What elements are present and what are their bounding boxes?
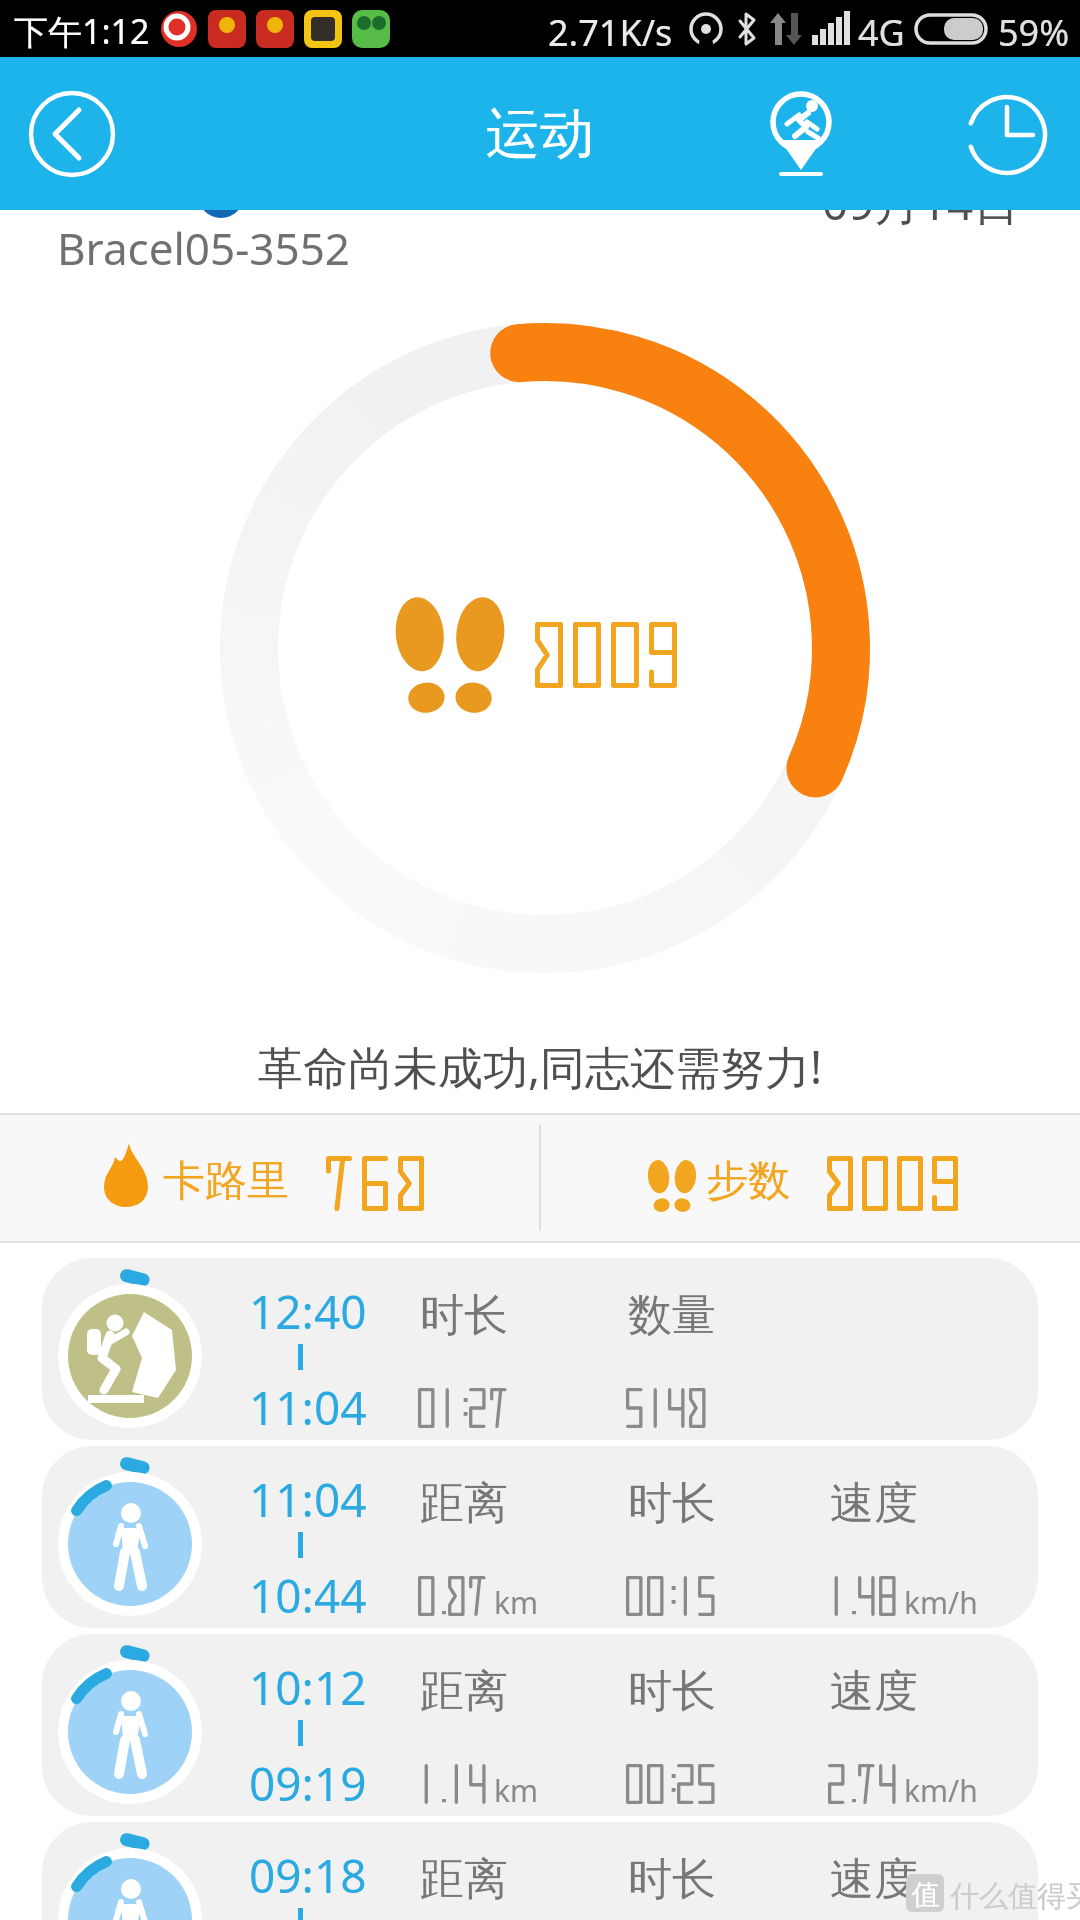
button[interactable]: 步数 — [541, 1115, 1080, 1241]
button[interactable] — [28, 90, 116, 178]
staticText: 时长 — [628, 1852, 716, 1907]
staticText: 09月14日 — [822, 171, 1020, 234]
staticText: 距离 — [420, 1664, 508, 1719]
staticText: 11:04 — [249, 1376, 367, 1439]
button[interactable]: 10:12 — [42, 1634, 1038, 1816]
button[interactable] — [760, 89, 844, 209]
staticText: 速度 — [830, 1852, 918, 1907]
staticText: 11:04 — [249, 1468, 367, 1531]
staticText: 什么值得买 — [950, 1878, 1080, 1915]
staticText: 时长 — [628, 1664, 716, 1719]
staticText: 值 — [912, 1877, 940, 1912]
staticText: 步数 — [706, 1155, 790, 1208]
button[interactable]: 卡路里 — [0, 1115, 539, 1241]
staticText: km/h — [904, 1582, 978, 1623]
staticText: 时长 — [628, 1476, 716, 1531]
staticText: 数量 — [628, 1288, 716, 1343]
staticText: 速度 — [830, 1476, 918, 1531]
staticText: 10:12 — [249, 1656, 367, 1719]
staticText: 10:44 — [249, 1564, 367, 1627]
button[interactable]: 11:04 — [42, 1446, 1038, 1628]
staticText: km — [494, 1770, 539, 1811]
staticText: 距离 — [420, 1852, 508, 1907]
staticText: 4G — [858, 8, 905, 57]
staticText: 09:19 — [249, 1752, 367, 1815]
staticText: 2.71K/s — [548, 8, 673, 57]
staticText: 下午1:12 — [14, 8, 150, 54]
staticText: 革命尚未成功,同志还需努力! — [0, 1036, 1080, 1097]
staticText: 09:18 — [249, 1844, 367, 1907]
staticText: 12:40 — [249, 1280, 367, 1343]
staticText: 时长 — [420, 1288, 508, 1343]
staticText: km/h — [904, 1770, 978, 1811]
button[interactable]: 12:40 — [42, 1258, 1038, 1440]
staticText: Bracel05-3552 — [57, 218, 351, 278]
staticText: 59% — [998, 8, 1070, 57]
staticText: 速度 — [830, 1664, 918, 1719]
button[interactable] — [965, 93, 1049, 177]
button[interactable]: 09:18 — [42, 1822, 1038, 1920]
staticText: 距离 — [420, 1476, 508, 1531]
staticText: 卡路里 — [163, 1155, 289, 1208]
staticText: km — [494, 1582, 539, 1623]
staticText: 运动 — [486, 100, 594, 168]
